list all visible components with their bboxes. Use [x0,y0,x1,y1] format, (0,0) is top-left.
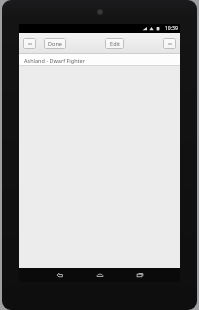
button[interactable]: Edit [105,38,124,49]
button[interactable]: Previous [23,38,36,49]
staticText: 10:39 [165,25,178,32]
button[interactable]: Recent apps [127,268,153,282]
button[interactable]: Ashland - Dwarf Fighter [19,54,180,66]
staticText: Done [48,40,62,47]
staticText: Ashland - Dwarf Fighter [24,57,85,64]
button[interactable]: Back [47,268,73,282]
button[interactable]: Next [163,38,176,49]
button[interactable]: Done [44,38,66,49]
button[interactable]: Home [87,268,113,282]
staticText: Edit [110,40,120,47]
